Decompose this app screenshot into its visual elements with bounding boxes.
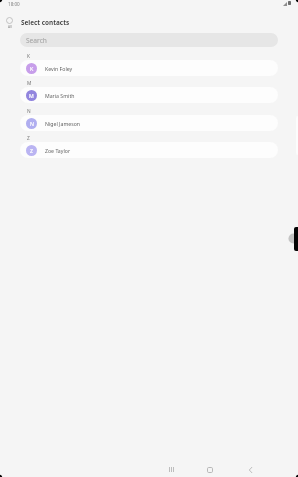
staticText: K xyxy=(27,53,30,60)
staticText: M xyxy=(29,92,34,99)
button[interactable]: Recents xyxy=(157,462,185,477)
button[interactable]: Edge panel handle xyxy=(294,227,298,251)
staticText: Select contacts xyxy=(21,18,70,27)
button[interactable]: Search xyxy=(20,33,278,47)
staticText: Maria Smith xyxy=(45,92,75,99)
button[interactable]: K xyxy=(20,60,278,76)
button[interactable]: N xyxy=(20,115,278,131)
staticText: Kevin Foley xyxy=(45,65,73,72)
staticText: Z xyxy=(27,135,30,142)
button[interactable]: Z xyxy=(20,142,278,158)
staticText: Search xyxy=(26,36,47,45)
staticText: Nigel Jameson xyxy=(45,120,81,127)
staticText: N xyxy=(30,120,34,127)
button[interactable]: Home xyxy=(196,462,224,477)
button[interactable]: Back xyxy=(236,462,264,477)
button[interactable]: Select all contacts xyxy=(3,17,16,29)
staticText: Z xyxy=(30,147,33,154)
button[interactable]: M xyxy=(20,87,278,103)
staticText: 18:00 xyxy=(8,1,20,7)
staticText: M xyxy=(27,80,32,87)
staticText: N xyxy=(27,108,31,115)
staticText: Zoe Taylor xyxy=(45,147,71,154)
staticText: K xyxy=(30,65,34,72)
staticText: All xyxy=(8,25,12,29)
